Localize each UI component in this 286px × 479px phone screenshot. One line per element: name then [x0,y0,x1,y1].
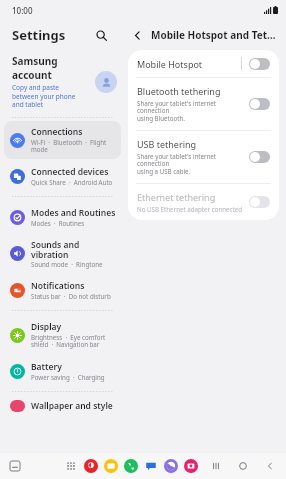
staticText: Modes · Routines [31,219,85,227]
staticText: account [12,68,52,82]
button[interactable]: Connected devices [4,161,121,191]
button[interactable]: Battery [4,356,121,386]
button[interactable]: Back [263,459,277,473]
button[interactable]: USB tethering [128,131,279,183]
staticText: Battery [31,361,62,373]
staticText: No USB Ethernet adapter connected [137,205,243,213]
button[interactable]: Modes and Routines [4,202,121,232]
staticText: Samsung [12,54,58,68]
button[interactable]: Home [236,459,250,473]
button[interactable]: Mobile Hotspot [128,50,279,77]
button[interactable]: Phone [124,459,138,473]
button[interactable]: Connections [4,121,121,159]
staticText: Modes and Routines [31,207,116,219]
button[interactable]: Samsung [0,50,125,115]
button[interactable]: Recents [209,459,223,473]
staticText: Brightness · Eye comfort shield · Naviga… [31,333,106,349]
staticText: Mobile Hotspot [137,58,203,70]
staticText: Status bar · Do not disturb [31,292,111,300]
staticText: Mobile Hotspot and Tether... [151,28,280,42]
staticText: Sound mode · Ringtone [31,260,103,268]
staticText: Display [31,321,62,333]
button[interactable]: Recent apps panel [8,459,22,473]
staticText: Ethernet tethering [137,191,216,203]
staticText: Copy and paste between your phone and ta… [12,83,76,109]
button[interactable]: Notifications [4,275,121,305]
staticText: Wallpaper and style [31,400,113,412]
button[interactable]: Sounds and vibration [4,234,121,273]
staticText: Quick Share · Android Auto [31,178,113,186]
button[interactable]: Gallery [84,459,98,473]
button[interactable]: Search [91,25,111,45]
button[interactable]: Messages [144,459,158,473]
staticText: Share your tablet's internet connection … [137,99,249,123]
staticText: Notifications [31,280,85,292]
button[interactable]: My Files [104,459,118,473]
staticText: Sounds and vibration [31,239,80,260]
button[interactable]: Toggle [249,196,270,208]
button[interactable]: Camera [184,459,198,473]
staticText: Power saving · Charging [31,373,105,381]
button[interactable]: Toggle [249,58,270,70]
staticText: Share your tablet's internet connection … [137,152,249,176]
button[interactable]: Display [4,316,121,354]
button[interactable]: Wallpaper and style [0,396,125,408]
staticText: USB tethering [137,138,197,150]
staticText: 10:00 [12,5,33,16]
button[interactable]: Toggle [249,151,270,163]
button[interactable]: Internet [164,459,178,473]
button[interactable]: Back [127,25,147,45]
button[interactable]: All apps [64,459,78,473]
staticText: Connected devices [31,166,109,178]
button[interactable]: Ethernet tethering [128,184,279,220]
button[interactable]: Bluetooth tethering [128,78,279,130]
staticText: Wi-Fi · Bluetooth · Flight mode [31,138,107,154]
staticText: Bluetooth tethering [137,85,221,97]
staticText: Settings [12,26,66,44]
button[interactable]: Toggle [249,98,270,110]
staticText: Connections [31,126,83,138]
